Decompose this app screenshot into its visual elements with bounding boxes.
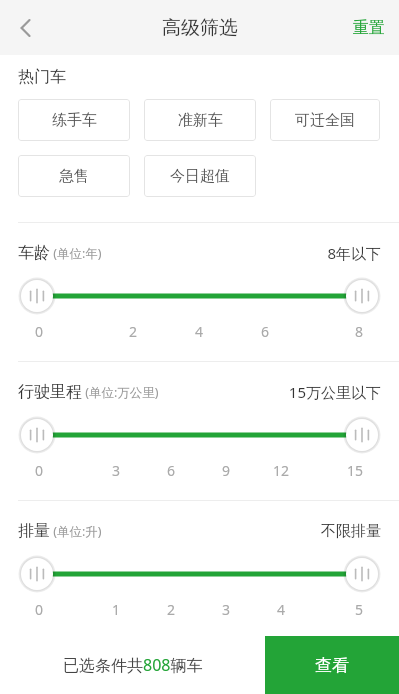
button[interactable]: 准新车 (144, 99, 256, 141)
staticText: 15万公里以下 (288, 382, 381, 402)
staticText: 0 (35, 600, 44, 619)
staticText: 3 (112, 461, 121, 480)
staticText: 4 (277, 600, 286, 619)
staticText: 1 (112, 600, 121, 619)
staticText: 4 (195, 322, 204, 341)
staticText: 不限排量 (321, 522, 381, 541)
staticText: 3 (222, 600, 231, 619)
staticText: 9 (222, 461, 231, 480)
button[interactable]: 急售 (18, 155, 130, 197)
staticText: 急售 (59, 167, 89, 186)
button[interactable]: Back (0, 2, 52, 54)
staticText: 6 (167, 461, 176, 480)
staticText: 重置 (353, 18, 385, 38)
staticText: 查看 (315, 655, 349, 676)
staticText: 车龄 (单位:年) (18, 243, 102, 263)
staticText: 热门车 (18, 67, 66, 87)
staticText: 12 (273, 461, 290, 480)
staticText: 行驶里程 (单位:万公里) (18, 382, 159, 402)
button[interactable]: 重置 (339, 0, 399, 55)
staticText: 高级筛选 (162, 16, 238, 40)
button[interactable]: 今日超值 (144, 155, 256, 197)
staticText: 2 (167, 600, 176, 619)
staticText: 8年以下 (327, 243, 381, 263)
staticText: 0 (35, 461, 44, 480)
button[interactable]: 可迁全国 (270, 99, 380, 141)
staticText: 练手车 (52, 111, 97, 130)
staticText: 今日超值 (170, 167, 230, 186)
button[interactable]: 查看 (265, 636, 399, 694)
staticText: 2 (129, 322, 138, 341)
staticText: 6 (261, 322, 270, 341)
staticText: 排量 (单位:升) (18, 521, 102, 541)
staticText: 5 (355, 600, 364, 619)
staticText: 15 (347, 461, 364, 480)
staticText: 可迁全国 (295, 111, 355, 130)
button[interactable]: 练手车 (18, 99, 130, 141)
staticText: 0 (35, 322, 44, 341)
staticText: 8 (355, 322, 364, 341)
button[interactable]: 已选条件共808辆车 (0, 636, 265, 694)
staticText: 已选条件共808辆车 (63, 654, 203, 676)
staticText: 准新车 (178, 111, 223, 130)
